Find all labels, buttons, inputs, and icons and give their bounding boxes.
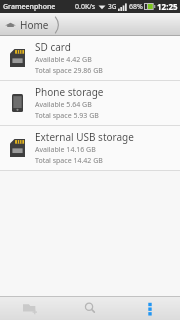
button[interactable]: More options — [120, 296, 180, 320]
button[interactable]: New folder — [0, 296, 60, 320]
button[interactable]: External USB storage — [0, 126, 180, 171]
staticText: Home — [20, 18, 49, 32]
staticText: SD card — [35, 40, 71, 54]
button[interactable]: Search — [60, 296, 120, 320]
staticText: 3G — [108, 2, 117, 11]
button[interactable]: SD card — [0, 36, 180, 81]
staticText: Total space 5.93 GB — [35, 111, 99, 121]
button[interactable]: Home — [5, 13, 62, 36]
staticText: External USB storage — [35, 130, 134, 144]
staticText: Total space 29.86 GB — [35, 66, 103, 76]
staticText: 12:25 — [157, 1, 178, 12]
staticText: Grameenphone — [3, 2, 56, 12]
staticText: Available 5.64 GB — [35, 100, 92, 110]
staticText: 68% — [129, 2, 143, 12]
staticText: Available 14.16 GB — [35, 145, 96, 155]
staticText: Total space 14.42 GB — [35, 156, 103, 166]
staticText: Phone storage — [35, 85, 104, 99]
button[interactable]: Phone storage — [0, 81, 180, 126]
staticText: 0.0K/s — [75, 2, 96, 12]
staticText: Available 4.42 GB — [35, 55, 92, 65]
